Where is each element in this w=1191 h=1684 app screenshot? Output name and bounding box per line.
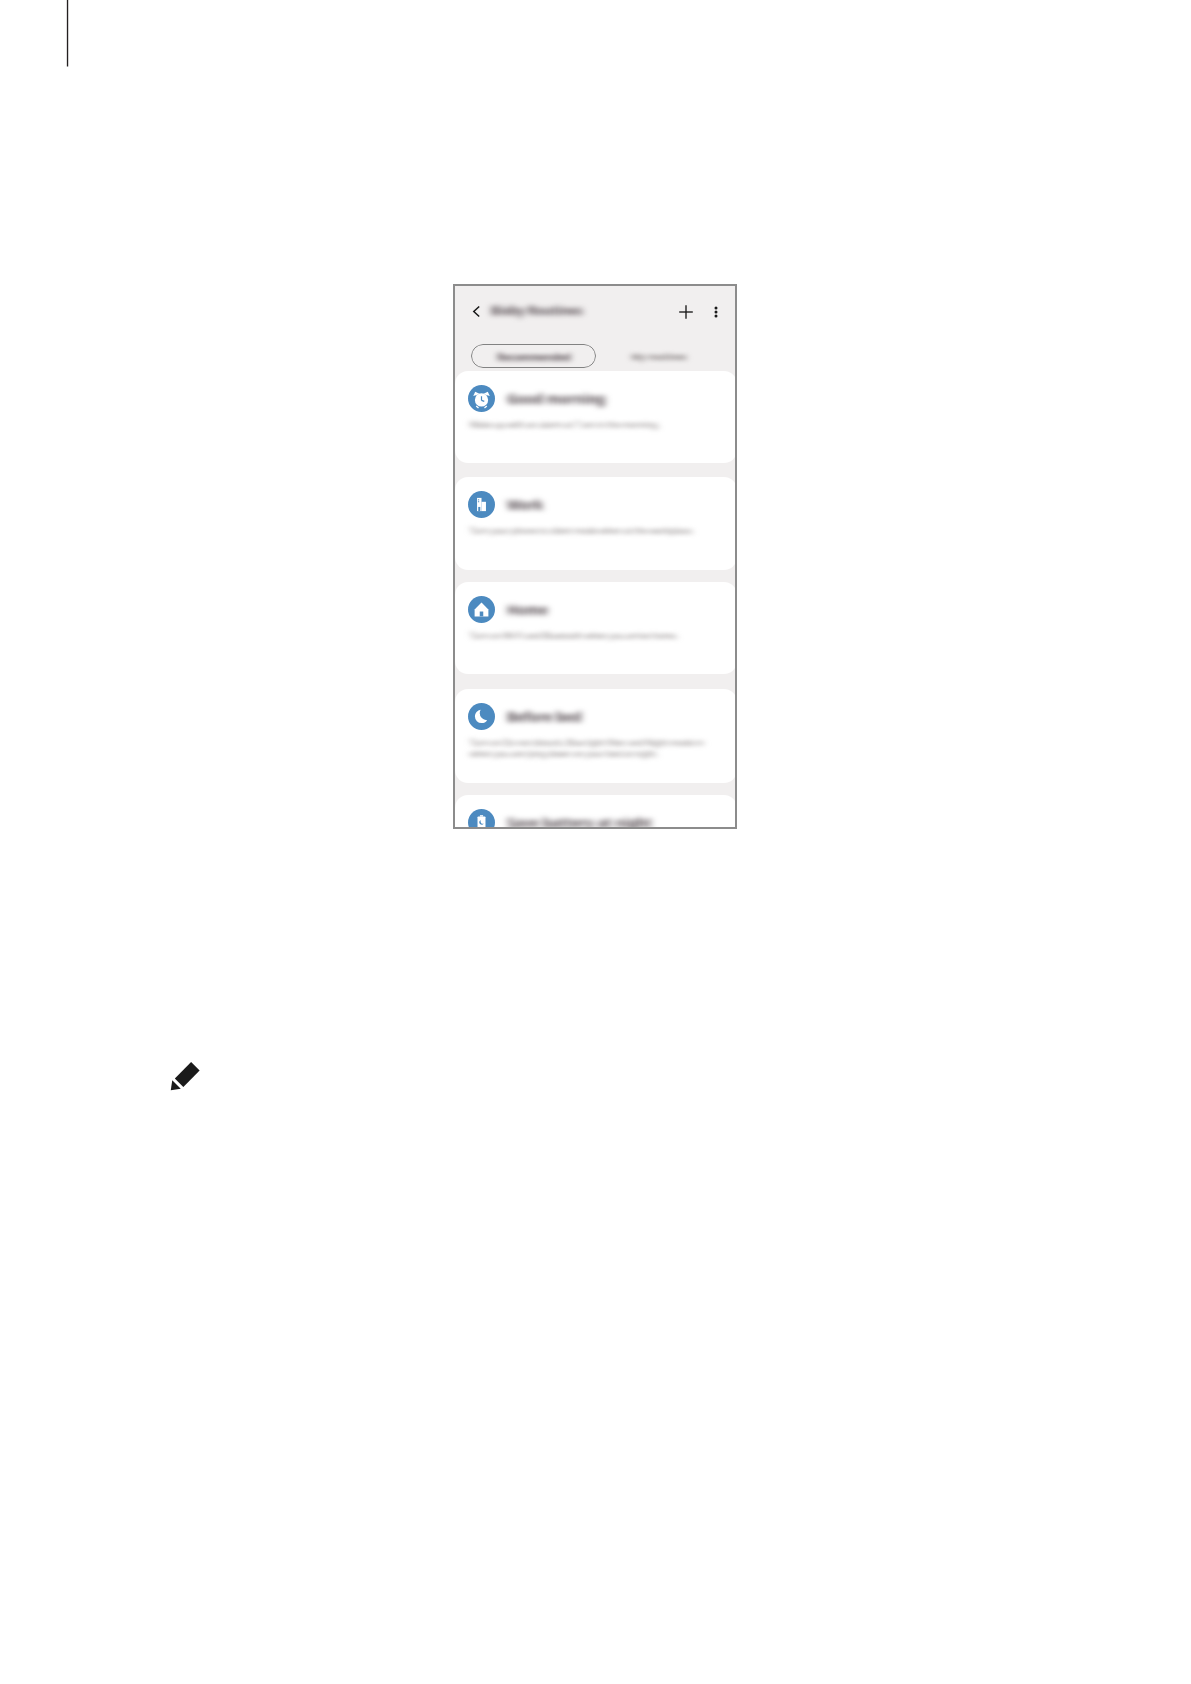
- staticText: Home: [507, 600, 548, 619]
- staticText: Save battery at night: [507, 813, 653, 829]
- button[interactable]: Navigate up: [464, 299, 489, 324]
- staticText: Before bed: [507, 707, 582, 726]
- staticText: Turn on Wi-Fi and Bluetooth when you arr…: [470, 630, 679, 642]
- staticText: Turn on Do not disturb, Blue light filte…: [470, 737, 704, 749]
- button[interactable]: Work: [455, 477, 737, 570]
- staticText: Recommended: [497, 350, 571, 363]
- button[interactable]: Good morning: [455, 371, 737, 463]
- button[interactable]: Add routine: [673, 299, 699, 325]
- staticText: Good morning: [507, 389, 606, 408]
- button[interactable]: Edit: [168, 1056, 205, 1093]
- button[interactable]: Before bed: [455, 689, 737, 783]
- button[interactable]: My routines: [606, 344, 711, 368]
- staticText: My routines: [631, 350, 687, 363]
- button[interactable]: More options: [703, 299, 729, 325]
- staticText: Bixby Routines: [491, 302, 583, 319]
- staticText: when you are lying down on your bed at n…: [470, 748, 658, 760]
- button[interactable]: Save battery at night: [455, 795, 737, 829]
- staticText: Turn your phone to silent mode when at t…: [470, 525, 694, 537]
- button[interactable]: Recommended: [471, 344, 596, 368]
- staticText: Work: [507, 495, 544, 514]
- staticText: Wake up with an alarm at 7 am in the mor…: [470, 419, 660, 431]
- button[interactable]: Home: [455, 582, 737, 674]
